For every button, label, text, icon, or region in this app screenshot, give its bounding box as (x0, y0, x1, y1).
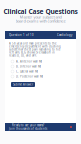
button[interactable]: D. Posterior wall MI (9, 74, 72, 79)
staticText: Ready to ace your exams? (12, 123, 44, 127)
staticText: Submit Answer (13, 83, 33, 86)
staticText: D. Posterior wall MI (16, 75, 43, 78)
button[interactable]: B. Inferior wall MI (9, 64, 72, 69)
staticText: substernal chest pain radiating to his (9, 48, 60, 51)
staticText: Question 1 of 10 (9, 33, 34, 37)
staticText: A 58-year-old man presents to the (9, 42, 57, 45)
staticText: board exams with confidence (15, 18, 65, 24)
button[interactable]: Submit Answer (11, 82, 35, 87)
staticText: leads II, III, and aVF. (9, 54, 37, 57)
staticText: left arm. ECG shows ST elevation in (9, 51, 55, 54)
staticText: C. Lateral wall MI (16, 70, 38, 73)
staticText: emergency department with crushing (9, 45, 61, 48)
button[interactable]: C. Lateral wall MI (9, 69, 72, 74)
staticText: Cardiology (57, 33, 72, 37)
button[interactable]: A. Anterior wall MI (9, 59, 72, 64)
staticText: Master your subject and (19, 14, 61, 20)
staticText: Join thousands of students (9, 127, 47, 130)
staticText: Clinical Case Questions (3, 7, 77, 16)
staticText: B. Inferior wall MI (16, 65, 41, 68)
staticText: A. Anterior wall MI (16, 60, 42, 63)
